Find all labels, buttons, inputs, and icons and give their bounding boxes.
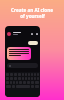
button[interactable]: Call bbox=[7, 29, 38, 38]
button[interactable] bbox=[28, 41, 38, 45]
staticText: of yourself bbox=[20, 13, 45, 19]
button[interactable]: Call bbox=[30, 32, 33, 35]
button[interactable] bbox=[7, 63, 38, 68]
button[interactable]: More options bbox=[35, 32, 38, 35]
button[interactable] bbox=[7, 47, 31, 60]
staticText: Create an AI clone bbox=[11, 7, 53, 13]
